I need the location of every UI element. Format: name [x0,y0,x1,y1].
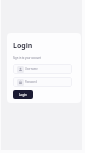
button[interactable]: Username [13,64,72,74]
staticText: Login [13,41,33,51]
staticText: Password [25,80,37,84]
button[interactable]: Login [13,90,33,99]
staticText: Sign in to your account [13,56,41,60]
staticText: Login [19,93,27,97]
staticText: Username [25,67,38,71]
button[interactable]: Password [13,77,72,87]
